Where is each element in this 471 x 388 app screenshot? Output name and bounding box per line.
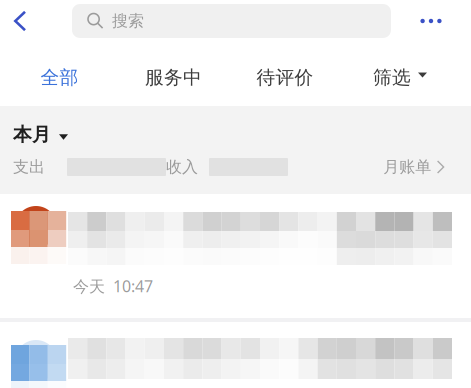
staticText: 筛选 bbox=[373, 66, 411, 89]
button[interactable]: 待评价 bbox=[228, 41, 342, 89]
staticText: 搜索 bbox=[112, 11, 144, 31]
button[interactable]: 今天 10:47 bbox=[0, 194, 471, 318]
button[interactable]: 全部 bbox=[0, 41, 119, 89]
staticText: 月账单 bbox=[383, 157, 431, 177]
staticText: 支出 bbox=[13, 157, 45, 177]
button[interactable]: 月账单 bbox=[383, 155, 471, 179]
staticText: 全部 bbox=[40, 66, 78, 89]
staticText: 服务中 bbox=[145, 66, 202, 89]
button[interactable]: 服务中 bbox=[119, 41, 228, 89]
staticText: 待评价 bbox=[256, 66, 313, 89]
staticText: 本月 bbox=[13, 123, 51, 146]
button[interactable]: 筛选 bbox=[342, 41, 471, 89]
staticText: 今天 10:47 bbox=[73, 275, 153, 297]
button[interactable]: More bbox=[391, 2, 471, 40]
staticText: 收入 bbox=[166, 157, 198, 177]
button[interactable]: 本月 bbox=[0, 106, 471, 146]
button[interactable]: Back bbox=[0, 2, 72, 40]
button[interactable] bbox=[0, 322, 471, 388]
button[interactable]: 搜索 bbox=[72, 4, 391, 38]
